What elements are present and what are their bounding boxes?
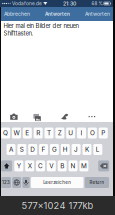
button[interactable]: Photo Library — [33, 113, 40, 120]
staticText: Hier mal ein Bilder der neuen — [4, 22, 79, 29]
staticText: T — [47, 129, 51, 137]
staticText: H — [63, 146, 68, 153]
staticText: J — [74, 146, 78, 153]
staticText: K — [85, 146, 89, 153]
button[interactable]: Z — [55, 127, 64, 138]
button[interactable]: P — [99, 127, 108, 138]
button[interactable]: B — [58, 160, 67, 171]
staticText: Return — [89, 180, 104, 185]
button[interactable]: F — [39, 144, 48, 155]
button[interactable]: Q — [1, 127, 10, 138]
button[interactable]: Shift — [1, 160, 12, 171]
button[interactable]: Return — [85, 177, 109, 188]
staticText: F — [41, 146, 45, 153]
button[interactable]: Delete — [98, 160, 109, 171]
staticText: N — [70, 162, 75, 170]
staticText: Q — [3, 129, 8, 137]
button[interactable]: M — [79, 160, 88, 171]
staticText: E — [25, 129, 29, 137]
staticText: L — [96, 146, 100, 153]
staticText: M — [81, 162, 87, 170]
staticText: Antworten — [45, 11, 70, 17]
button[interactable]: L — [93, 144, 102, 155]
button[interactable]: D — [28, 144, 37, 155]
staticText: W — [13, 129, 19, 137]
button[interactable]: U — [66, 127, 75, 138]
button[interactable]: S — [17, 144, 26, 155]
button[interactable]: J — [72, 144, 81, 155]
staticText: 68 % — [91, 1, 102, 6]
staticText: 21:30 — [63, 0, 76, 7]
button[interactable]: O — [88, 127, 97, 138]
staticText: S — [20, 146, 24, 153]
button[interactable]: W — [12, 127, 21, 138]
staticText: Shifttasten. — [4, 30, 34, 37]
button[interactable]: V — [47, 160, 56, 171]
button[interactable]: Antworten — [83, 7, 111, 21]
staticText: 123 — [2, 180, 10, 185]
staticText: Y — [17, 162, 21, 170]
button[interactable]: R — [34, 127, 43, 138]
button[interactable]: Take Photo — [10, 113, 18, 120]
button[interactable]: Y — [14, 160, 23, 171]
button[interactable]: E — [23, 127, 32, 138]
staticText: A — [9, 146, 13, 153]
staticText: B — [60, 162, 64, 170]
button[interactable]: X — [25, 160, 34, 171]
staticText: C — [38, 162, 43, 170]
staticText: X — [28, 162, 32, 170]
staticText: P — [101, 129, 105, 137]
button[interactable]: Abbrechen — [2, 7, 31, 21]
button[interactable]: A — [6, 144, 15, 155]
staticText: O — [90, 129, 95, 137]
staticText: Vodafone.de — [12, 1, 42, 6]
staticText: G — [52, 146, 57, 153]
staticText: Z — [58, 129, 62, 137]
button[interactable]: Dictation — [22, 177, 30, 188]
button[interactable]: More Options — [88, 113, 96, 120]
button[interactable]: Next Keyboard — [12, 177, 21, 188]
button[interactable]: Leerzeichen — [31, 177, 83, 188]
button[interactable]: N — [68, 160, 77, 171]
button[interactable]: Markup — [61, 113, 68, 120]
staticText: V — [49, 162, 53, 170]
button[interactable]: G — [50, 144, 59, 155]
staticText: R — [36, 129, 40, 137]
staticText: I — [80, 129, 82, 137]
button[interactable]: T — [44, 127, 53, 138]
button[interactable]: C — [36, 160, 45, 171]
staticText: Abbrechen — [4, 11, 30, 17]
staticText: Antworten — [85, 11, 110, 17]
staticText: Leerzeichen — [43, 180, 71, 185]
staticText: D — [30, 146, 35, 153]
button[interactable]: I — [77, 127, 86, 138]
staticText: 577x1024 177kb — [21, 200, 93, 211]
button[interactable]: K — [82, 144, 91, 155]
button[interactable]: 123 — [1, 177, 11, 188]
button[interactable]: H — [61, 144, 70, 155]
staticText: U — [68, 129, 73, 137]
